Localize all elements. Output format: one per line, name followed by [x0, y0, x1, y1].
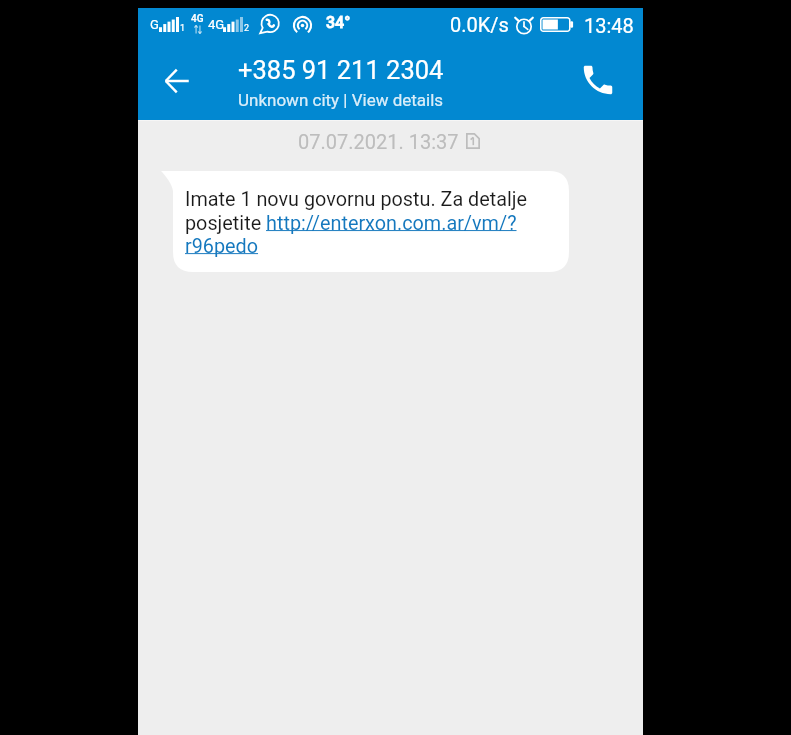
- staticText: 34°: [326, 13, 351, 32]
- staticText: 4G: [208, 17, 225, 32]
- staticText: 07.07.2021. 13:37: [298, 130, 459, 153]
- staticText: +385 91 211 2304: [238, 55, 444, 85]
- button[interactable]: Imate 1 novu govornu postu. Za detalje p…: [161, 171, 569, 272]
- button[interactable]: Back: [153, 57, 201, 105]
- staticText: Imate 1 novu govornu postu. Za detalje p…: [185, 188, 533, 257]
- staticText: 0.0K/s: [450, 13, 509, 36]
- staticText: G: [150, 17, 159, 32]
- button[interactable]: Call: [574, 56, 622, 104]
- staticText: 2: [244, 23, 250, 34]
- staticText: 1: [180, 23, 186, 34]
- staticText: Unknown city | View details: [238, 90, 444, 110]
- staticText: 13:48: [584, 14, 634, 37]
- staticText: 4G: [191, 13, 204, 25]
